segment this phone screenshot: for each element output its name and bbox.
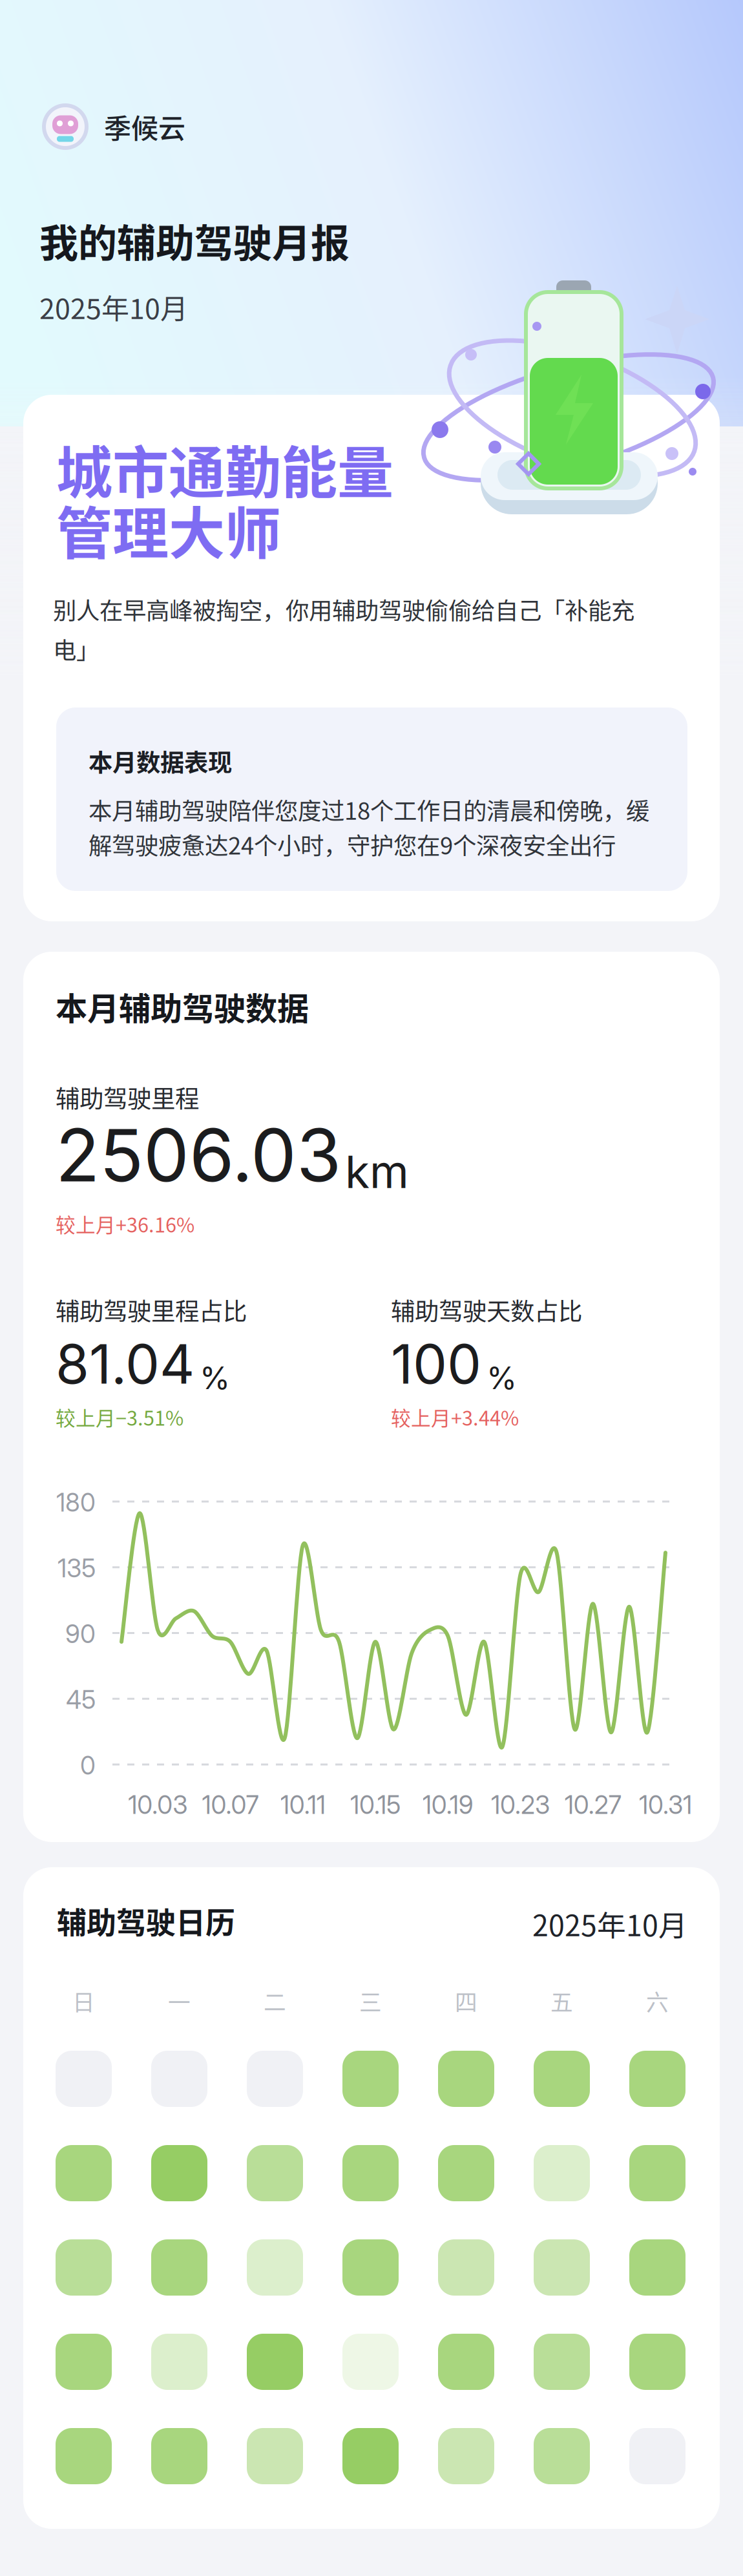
staticText: %: [487, 1359, 517, 1397]
staticText: 90: [65, 1619, 96, 1649]
staticText: 180: [56, 1487, 96, 1518]
staticText: 本月辅助驾驶陪伴您度过18个工作日的清晨和傍晚，缓解驾驶疲惫达24个小时，守护您…: [89, 792, 649, 862]
staticText: 辅助驾驶日历: [57, 1899, 235, 1942]
staticText: 四: [455, 1985, 477, 2017]
staticText: 六: [646, 1985, 669, 2017]
staticText: 城市通勤能量 管理大师: [56, 439, 393, 560]
staticText: 100: [391, 1331, 481, 1397]
staticText: 2506.03: [56, 1111, 341, 1199]
staticText: 三: [359, 1985, 382, 2017]
staticText: 0: [80, 1750, 96, 1781]
staticText: 较上月+36.16%: [56, 1209, 194, 1238]
staticText: 我的辅助驾驶月报: [39, 213, 350, 269]
staticText: 二: [264, 1985, 286, 2017]
staticText: 10.15: [350, 1790, 401, 1820]
staticText: 2025年10月: [532, 1903, 687, 1945]
staticText: 较上月+3.44%: [391, 1403, 519, 1431]
staticText: 81.04: [56, 1331, 194, 1397]
button[interactable]: 季候云: [36, 98, 192, 155]
staticText: 10.23: [491, 1790, 550, 1820]
staticText: 辅助驾驶里程: [56, 1080, 199, 1115]
staticText: 本月辅助驾驶数据: [56, 983, 309, 1029]
staticText: 本月数据表现: [89, 744, 232, 779]
staticText: 10.07: [202, 1790, 259, 1820]
staticText: 135: [58, 1553, 96, 1583]
staticText: 10.19: [422, 1790, 473, 1820]
staticText: 10.27: [564, 1790, 621, 1820]
staticText: 日: [72, 1985, 95, 2017]
staticText: 10.03: [128, 1790, 187, 1820]
staticText: 五: [550, 1985, 573, 2017]
staticText: 辅助驾驶天数占比: [391, 1292, 582, 1327]
staticText: km: [345, 1145, 409, 1199]
staticText: 较上月−3.51%: [56, 1403, 183, 1431]
staticText: %: [200, 1359, 230, 1397]
staticText: 10.11: [280, 1790, 325, 1820]
staticText: 辅助驾驶里程占比: [56, 1292, 247, 1327]
staticText: 45: [66, 1685, 96, 1715]
staticText: 2025年10月: [39, 287, 188, 327]
staticText: 别人在早高峰被掏空，你用辅助驾驶偷偷给自己「补能充电」: [53, 589, 634, 669]
staticText: 10.31: [639, 1790, 692, 1820]
staticText: 一: [168, 1985, 191, 2017]
staticText: 季候云: [104, 107, 185, 146]
